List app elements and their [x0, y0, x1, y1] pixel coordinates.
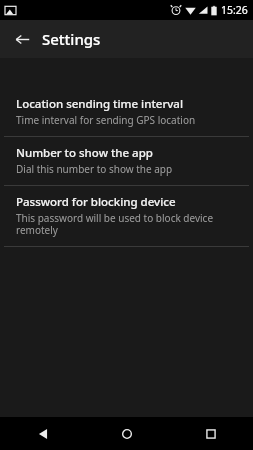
button[interactable]: Recent apps [169, 417, 253, 450]
staticText: Settings [42, 29, 101, 49]
button[interactable]: Back [0, 417, 85, 450]
button[interactable]: Location sending time interval [0, 88, 253, 136]
staticText: Number to show the app [16, 145, 153, 161]
staticText: This password will be used to block devi… [16, 211, 239, 237]
button[interactable]: Password for blocking device [0, 186, 253, 246]
button[interactable]: Back [10, 27, 34, 51]
staticText: Location sending time interval [16, 96, 184, 112]
staticText: 15:26 [221, 3, 248, 17]
button[interactable]: Number to show the app [0, 137, 253, 185]
staticText: Password for blocking device [16, 194, 176, 210]
staticText: Dial this number to show the app [16, 162, 173, 176]
staticText: Time interval for sending GPS location [16, 113, 196, 127]
button[interactable]: Home [85, 417, 169, 450]
